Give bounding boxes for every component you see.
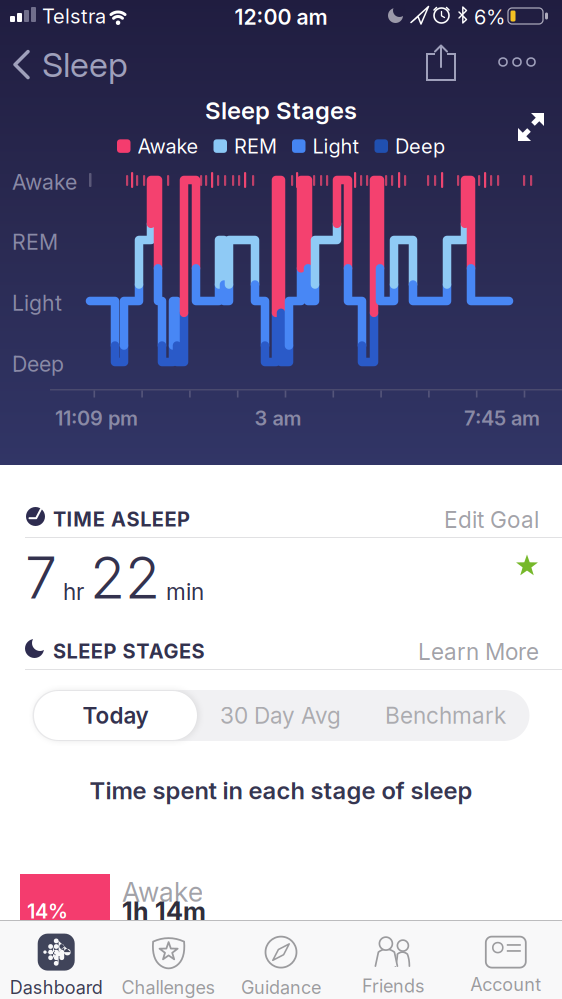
staticText: Sleep (42, 44, 128, 85)
staticText: Edit Goal (444, 506, 539, 533)
button[interactable]: Account (450, 920, 562, 999)
staticText: 22 (90, 543, 160, 612)
staticText: Deep (12, 351, 64, 377)
staticText: Friends (362, 975, 425, 997)
staticText: 7:45 am (464, 406, 540, 430)
button[interactable]: Challenges (112, 920, 225, 999)
button[interactable]: Back (0, 44, 128, 85)
staticText: hr (63, 578, 84, 605)
button[interactable]: Benchmark (363, 691, 528, 740)
staticText: 6% (474, 5, 505, 29)
button[interactable]: Share (427, 45, 457, 81)
staticText: Today (82, 702, 148, 729)
button[interactable]: Learn More (418, 638, 539, 665)
staticText: Challenges (122, 977, 216, 998)
staticText: 14% (27, 899, 68, 923)
staticText: Telstra (42, 4, 106, 28)
staticText: Deep (395, 134, 445, 158)
button[interactable]: Dashboard (0, 920, 112, 999)
staticText: 12:00 am (234, 4, 327, 30)
staticText: min (166, 578, 204, 605)
staticText: Light (12, 290, 62, 316)
staticText: Learn More (418, 638, 539, 665)
staticText: Time spent in each stage of sleep (89, 776, 472, 805)
staticText: Guidance (241, 977, 321, 998)
staticText: REM (234, 134, 277, 158)
staticText: 3 am (254, 406, 301, 430)
staticText: Sleep Stages (205, 96, 357, 125)
staticText: Light (312, 134, 359, 158)
button[interactable]: Friends (337, 920, 450, 999)
staticText: 30 Day Avg (220, 702, 341, 729)
staticText: REM (12, 229, 58, 255)
staticText: 1h 14m (122, 896, 206, 927)
button[interactable]: 30 Day Avg (198, 691, 363, 740)
staticText: 7 (25, 543, 57, 612)
button[interactable]: More (499, 58, 535, 66)
staticText: TIME ASLEEP (53, 507, 190, 531)
staticText: Dashboard (10, 977, 103, 998)
staticText: Awake (137, 134, 198, 158)
button[interactable]: Guidance (225, 920, 337, 999)
staticText: SLEEP STAGES (53, 639, 205, 663)
button[interactable]: Expand chart (518, 113, 545, 141)
staticText: Awake (122, 876, 203, 908)
button[interactable]: Today (34, 691, 197, 740)
button[interactable]: Edit Goal (444, 506, 539, 533)
staticText: 11:09 pm (55, 406, 138, 430)
staticText: Benchmark (385, 702, 506, 729)
staticText: Awake (12, 169, 77, 195)
staticText: Account (470, 974, 541, 995)
